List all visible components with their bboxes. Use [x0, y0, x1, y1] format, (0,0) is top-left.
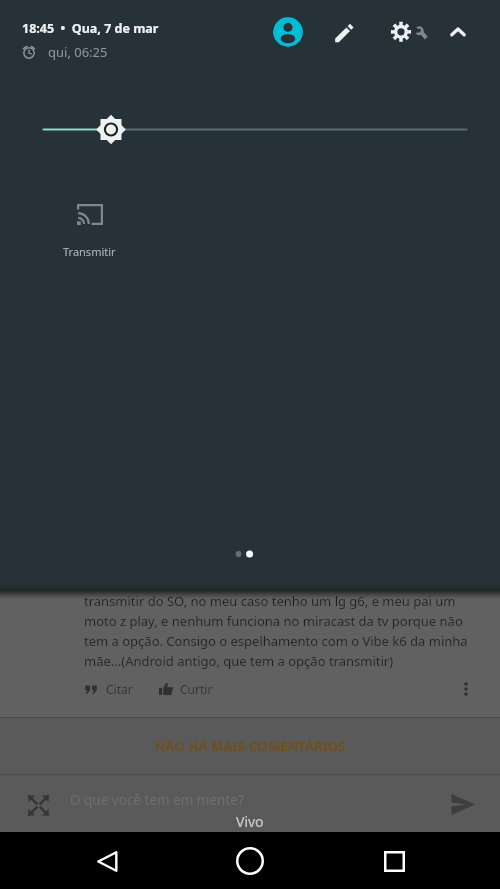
button[interactable]: Send [448, 789, 478, 819]
button[interactable]: Home [222, 833, 278, 889]
button[interactable]: Recent apps [366, 833, 422, 889]
button[interactable]: Settings [388, 17, 432, 61]
button[interactable]: Transmitir [49, 190, 130, 266]
staticText: Curtir [180, 681, 213, 697]
button[interactable]: More options [454, 677, 478, 701]
button[interactable]: Citar [82, 677, 135, 701]
staticText: moto z play, e nenhum funciona no miraca… [84, 612, 463, 632]
staticText: qui, 06:25 [48, 43, 108, 61]
staticText: O que você tem em mente? [70, 791, 244, 809]
staticText: mãe...(Android antigo, que tem a opção t… [84, 652, 394, 672]
button[interactable]: Brightness [0, 112, 500, 147]
button[interactable]: Edit [328, 17, 360, 49]
staticText: Aqui apenas os aparelhos Samsung e Sony … [84, 572, 474, 592]
staticText: tem a opção. Consigo o espelhamento com … [84, 632, 468, 652]
staticText: transmitir do SO, no meu caso tenho um l… [84, 592, 456, 612]
button[interactable]: Collapse [442, 17, 474, 49]
staticText: 18:45 • Qua, 7 de mar [22, 20, 159, 37]
staticText: NÃO HÁ MAIS COMENTÁRIOS [155, 737, 346, 755]
staticText: Citar [106, 681, 133, 697]
staticText: Vivo [236, 812, 264, 831]
staticText: Transmitir [63, 244, 116, 259]
button[interactable]: Curtir [157, 677, 215, 701]
button[interactable]: User profile [273, 17, 303, 47]
button[interactable]: Back [79, 833, 135, 889]
button[interactable]: Expand [23, 790, 53, 820]
button[interactable]: NÃO HÁ MAIS COMENTÁRIOS [0, 718, 500, 774]
